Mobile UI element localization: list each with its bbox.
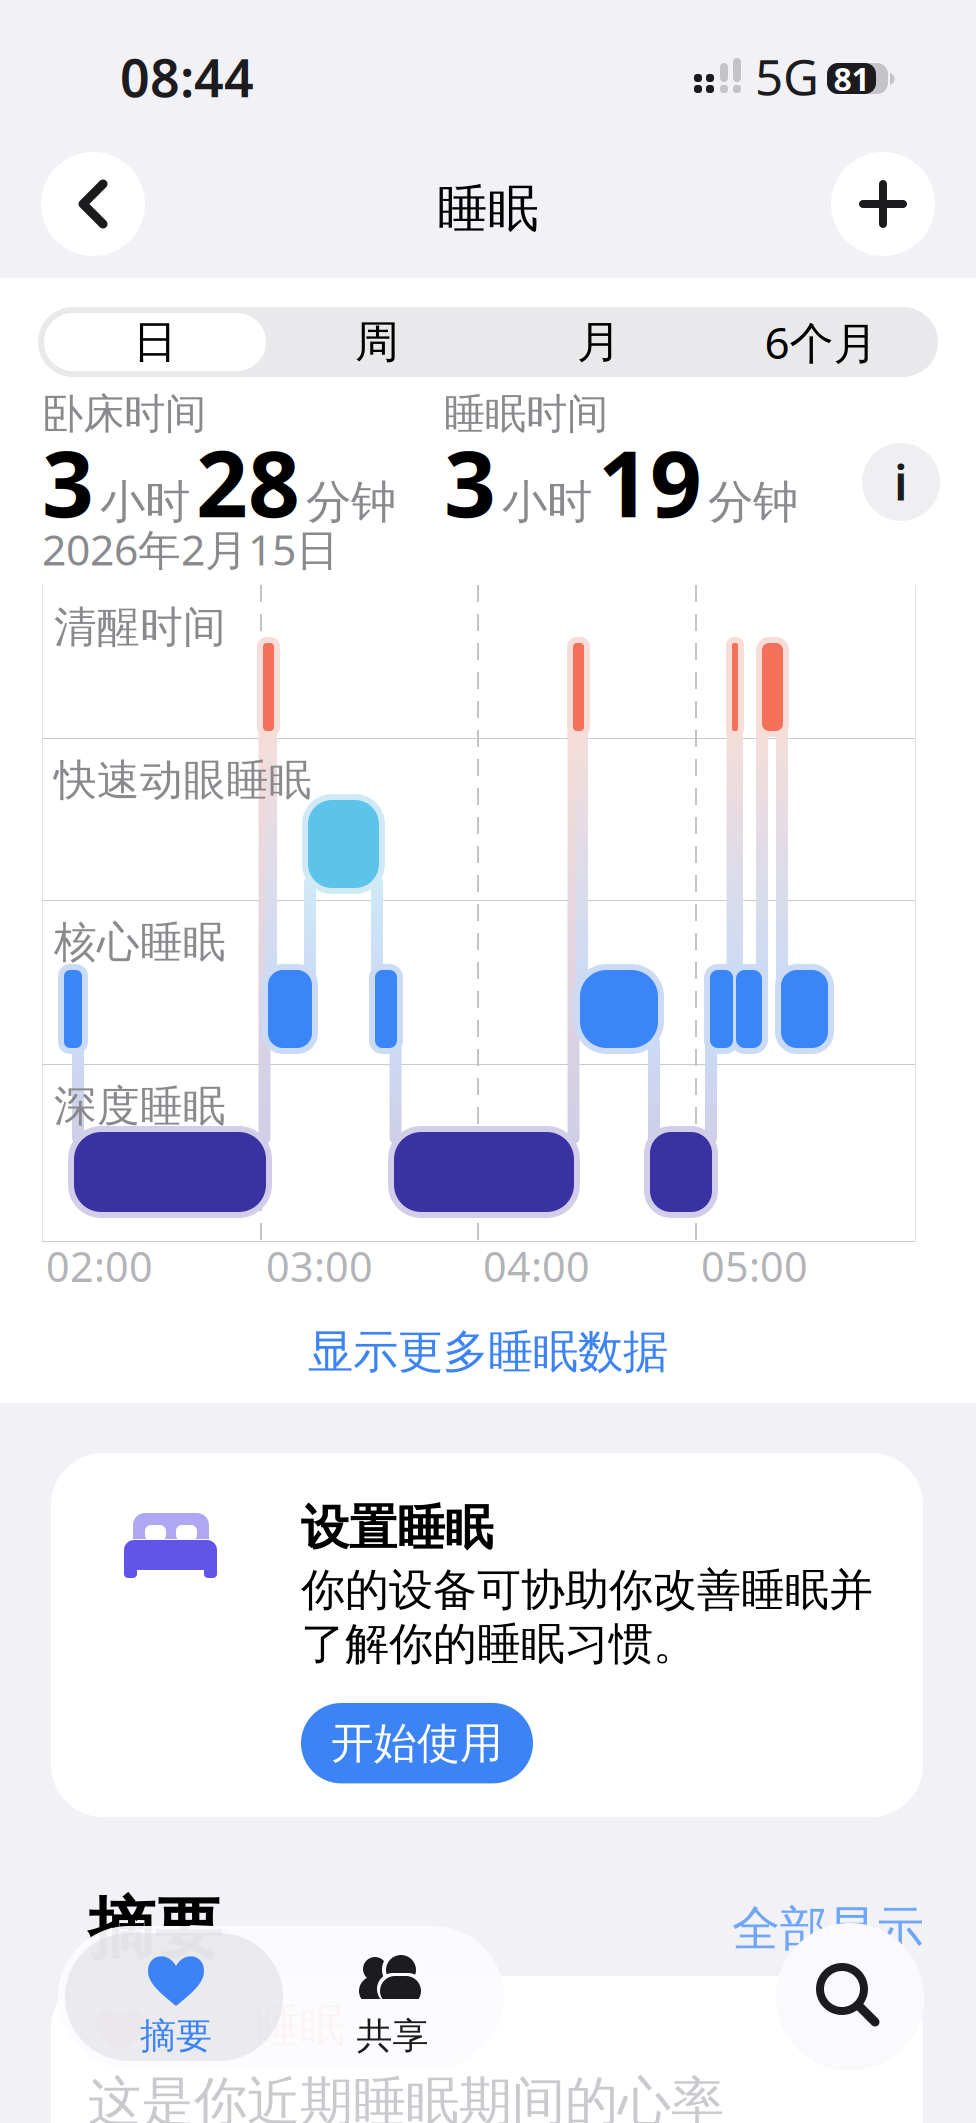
staticText: 睡眠 bbox=[255, 1998, 345, 2054]
staticText: 3 bbox=[42, 422, 94, 542]
staticText: 显示更多睡眠数据 bbox=[308, 1324, 668, 1380]
staticText: 摘要 bbox=[88, 1888, 222, 1970]
staticText: 周 bbox=[355, 315, 399, 369]
button[interactable]: 日 bbox=[44, 313, 266, 371]
staticText: 19 bbox=[598, 422, 702, 542]
button[interactable]: 全部显示 bbox=[764, 1904, 924, 1954]
staticText: 摘要 bbox=[140, 2014, 212, 2058]
staticText: 3 bbox=[444, 422, 496, 542]
staticText: 小时 bbox=[100, 474, 190, 530]
button[interactable]: 信息 bbox=[862, 443, 940, 521]
staticText: 清醒时间 bbox=[54, 601, 226, 653]
staticText: 设置睡眠 bbox=[301, 1498, 493, 1557]
staticText: 睡眠时间 bbox=[444, 389, 608, 439]
button[interactable]: 6个月 bbox=[710, 313, 932, 371]
staticText: 5G bbox=[755, 43, 819, 109]
staticText: 卧床时间 bbox=[42, 389, 206, 439]
button[interactable]: 搜索 bbox=[776, 1923, 924, 2071]
staticText: 开始使用 bbox=[331, 1717, 503, 1769]
staticText: 快速动眼睡眠 bbox=[54, 754, 312, 806]
staticText: 你的设备可协助你改善睡眠并 bbox=[301, 1563, 873, 1617]
staticText: 81 bbox=[833, 57, 869, 100]
staticText: 全部显示 bbox=[732, 1899, 924, 1958]
button[interactable]: 月 bbox=[488, 313, 710, 371]
staticText: 小时 bbox=[502, 474, 592, 530]
staticText: i bbox=[894, 450, 908, 514]
staticText: 月 bbox=[577, 315, 621, 369]
staticText: 了解你的睡眠习惯。 bbox=[301, 1617, 697, 1671]
staticText: 日 bbox=[133, 315, 177, 369]
staticText: 08:44 bbox=[120, 42, 254, 112]
staticText: 2026年2月15日 bbox=[42, 521, 339, 577]
staticText: 03:00 bbox=[266, 1239, 373, 1293]
staticText: 核心睡眠 bbox=[54, 916, 226, 968]
staticText: 28 bbox=[196, 422, 300, 542]
staticText: 共享 bbox=[356, 2014, 428, 2058]
button[interactable]: 显示更多睡眠数据 bbox=[0, 1296, 976, 1408]
staticText: 这是你近期睡眠期间的心率 bbox=[88, 2069, 724, 2123]
button[interactable]: 添加 bbox=[831, 152, 935, 256]
staticText: 分钟 bbox=[306, 474, 396, 530]
staticText: 分钟 bbox=[708, 474, 798, 530]
button[interactable]: 返回 bbox=[41, 152, 145, 256]
staticText: 02:00 bbox=[46, 1239, 153, 1293]
staticText: 深度睡眠 bbox=[54, 1080, 226, 1132]
staticText: 睡眠 bbox=[437, 178, 539, 240]
staticText: 6个月 bbox=[764, 313, 877, 371]
button[interactable]: 共享 bbox=[281, 1926, 504, 2068]
button[interactable]: 周 bbox=[266, 313, 488, 371]
button[interactable]: 摘要 bbox=[58, 1926, 281, 2068]
button[interactable]: 开始使用 bbox=[301, 1703, 533, 1783]
staticText: 04:00 bbox=[483, 1239, 590, 1293]
staticText: 05:00 bbox=[701, 1239, 808, 1293]
